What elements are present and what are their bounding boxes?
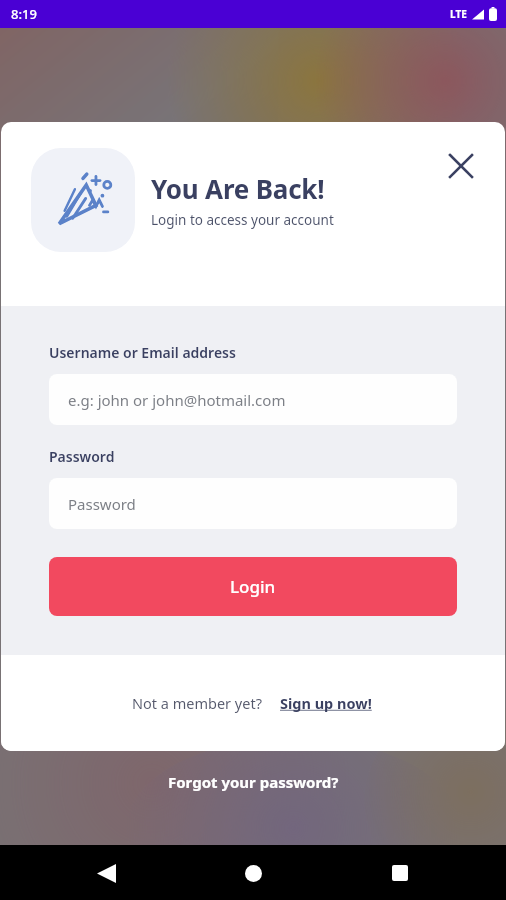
staticText: Not a member yet? [132,693,262,713]
button[interactable]: Home [233,853,273,893]
staticText: Login to access your account [151,211,334,229]
button[interactable]: Recent apps [380,853,420,893]
button[interactable]: Password [49,478,457,529]
button[interactable]: Login [49,557,457,616]
staticText: You Are Back! [151,171,325,206]
staticText: Sign up now! [280,693,372,713]
button[interactable]: Back [86,853,126,893]
button[interactable]: Close [443,148,479,184]
staticText: Forgot your password? [168,772,339,792]
staticText: 8:19 [11,5,37,23]
staticText: Username or Email address [49,343,236,362]
button[interactable]: Sign up now! [278,691,374,715]
staticText: e.g: john or john@hotmail.com [68,390,286,410]
staticText: Login [230,575,276,598]
button[interactable]: e.g: john or john@hotmail.com [49,374,457,425]
staticText: Password [68,494,136,514]
staticText: Password [49,447,115,466]
button[interactable]: Forgot your password? [162,766,345,798]
staticText: LTE [450,7,467,21]
